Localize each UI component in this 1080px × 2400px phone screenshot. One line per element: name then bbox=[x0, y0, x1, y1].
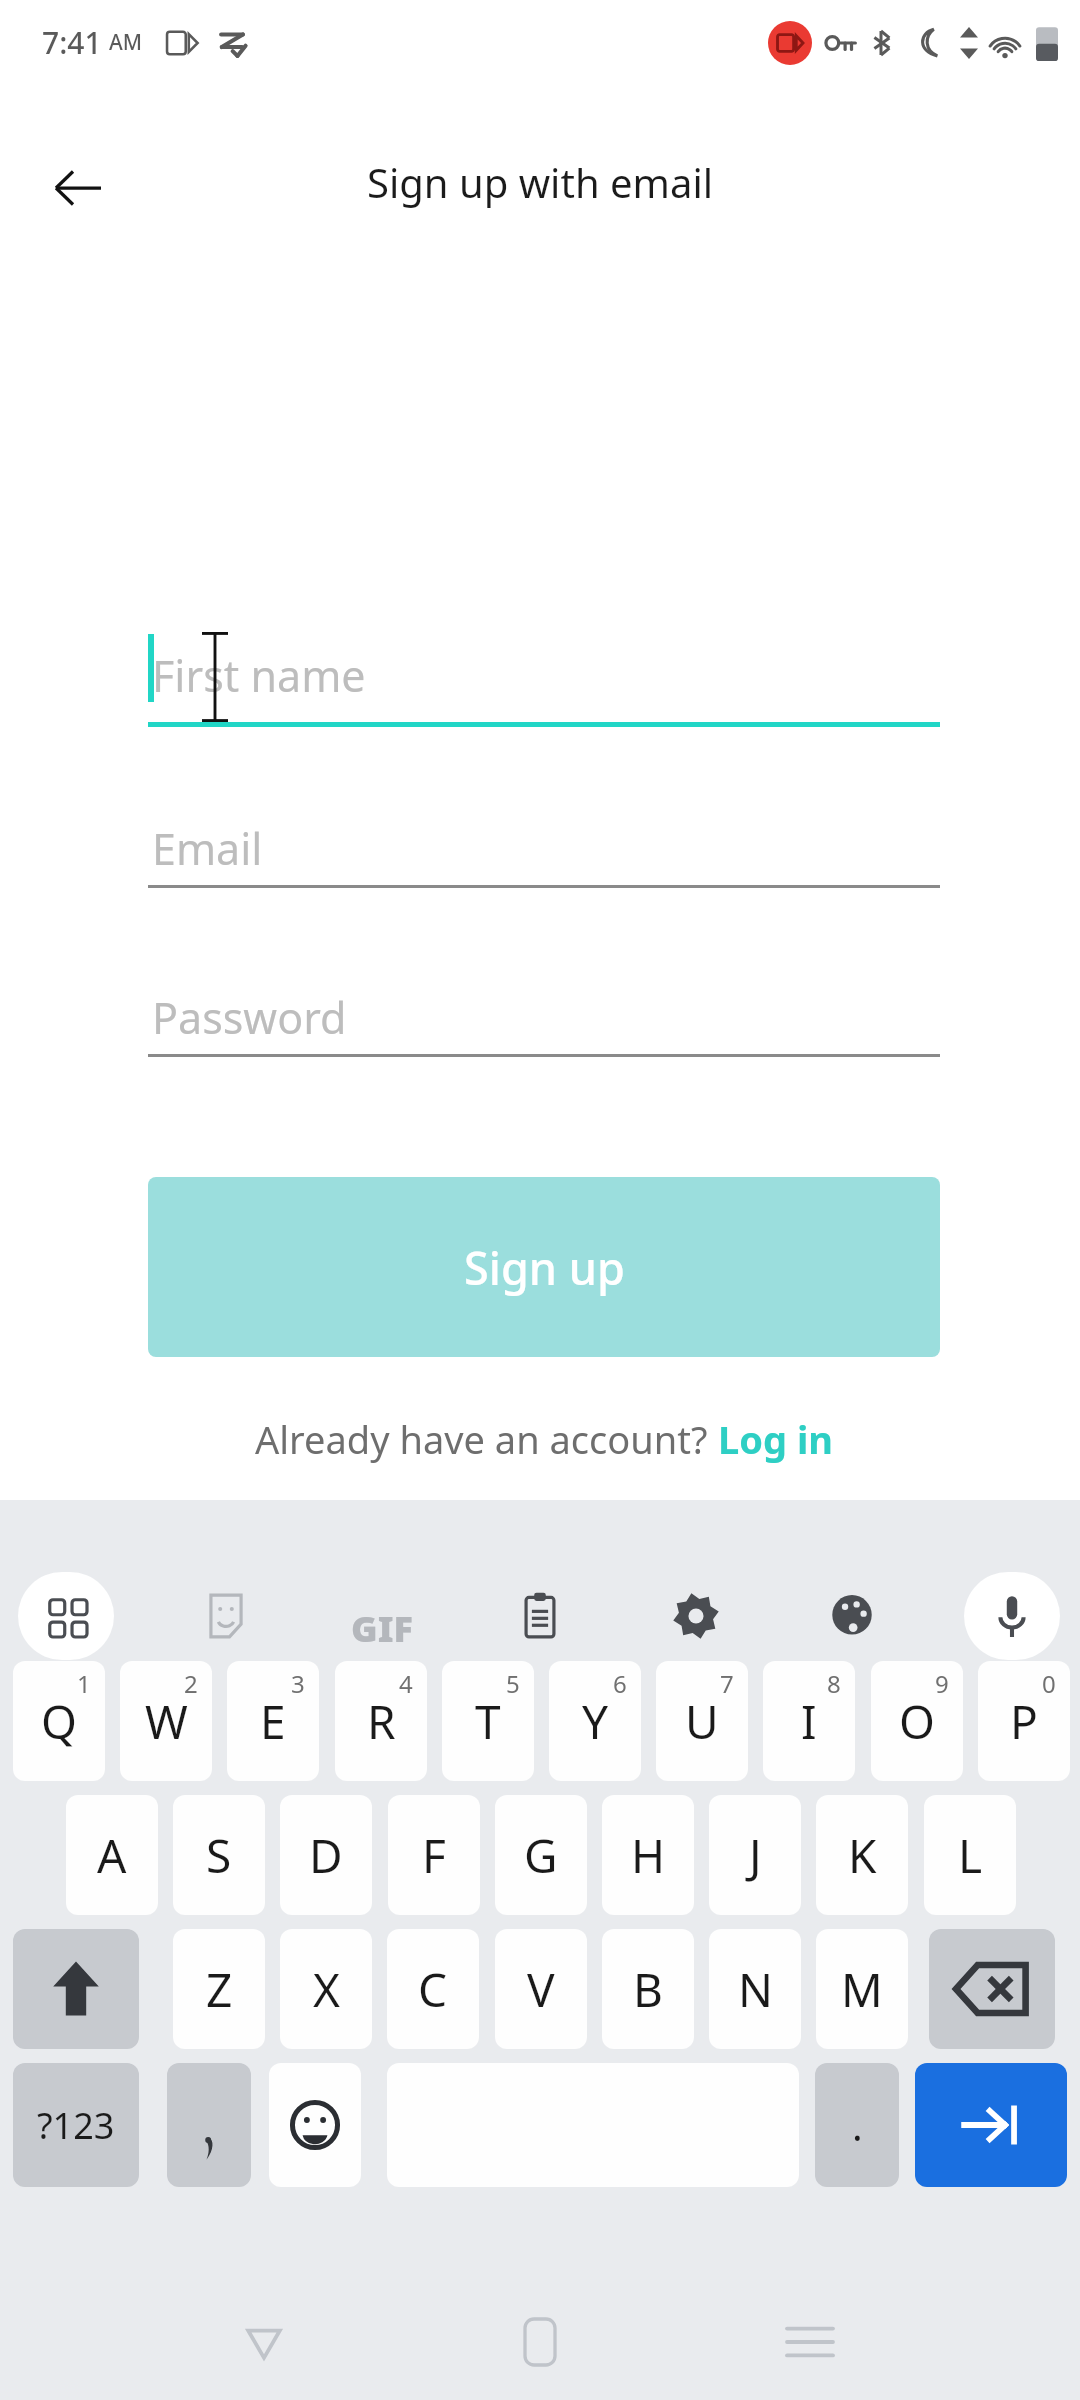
staticText: 3 bbox=[291, 1667, 305, 1700]
button[interactable]: I bbox=[763, 1661, 855, 1781]
staticText: R bbox=[367, 1690, 396, 1753]
button[interactable]: Next bbox=[915, 2063, 1067, 2187]
button[interactable]: Period bbox=[815, 2063, 899, 2187]
button[interactable]: Back bbox=[30, 140, 126, 236]
button[interactable]: H bbox=[602, 1795, 694, 1915]
staticText: Email bbox=[152, 819, 263, 878]
button[interactable]: GIF bbox=[328, 1596, 436, 1660]
button[interactable]: U bbox=[656, 1661, 748, 1781]
button[interactable]: Back bbox=[226, 2304, 302, 2380]
button[interactable]: A bbox=[66, 1795, 158, 1915]
button[interactable]: Settings bbox=[648, 1572, 744, 1660]
button[interactable]: First name bbox=[148, 626, 940, 722]
staticText: N bbox=[738, 1958, 773, 2021]
staticText: L bbox=[958, 1824, 983, 1887]
staticText: 4 bbox=[399, 1667, 413, 1700]
staticText: X bbox=[313, 1958, 340, 2021]
button[interactable]: Log in bbox=[718, 1413, 833, 1465]
button[interactable]: F bbox=[388, 1795, 480, 1915]
button[interactable]: Q bbox=[13, 1661, 105, 1781]
staticText: 7 bbox=[720, 1667, 734, 1700]
staticText: ?123 bbox=[37, 2101, 115, 2150]
staticText: C bbox=[418, 1958, 448, 2021]
button[interactable]: M bbox=[816, 1929, 908, 2049]
button[interactable]: V bbox=[495, 1929, 587, 2049]
staticText: 1 bbox=[77, 1667, 91, 1700]
staticText: GIF bbox=[351, 1604, 413, 1653]
staticText: E bbox=[260, 1690, 286, 1753]
staticText: Log in bbox=[718, 1413, 833, 1465]
staticText: 6 bbox=[613, 1667, 627, 1700]
staticText: S bbox=[206, 1824, 232, 1887]
button[interactable]: T bbox=[442, 1661, 534, 1781]
staticText: 5 bbox=[506, 1667, 520, 1700]
button[interactable]: Email bbox=[148, 809, 940, 888]
button[interactable]: Clipboard bbox=[492, 1572, 588, 1660]
staticText: AM bbox=[109, 28, 143, 57]
staticText: 7:41 bbox=[42, 22, 102, 63]
button[interactable]: Emoji bbox=[269, 2063, 361, 2187]
button[interactable]: R bbox=[335, 1661, 427, 1781]
staticText: D bbox=[309, 1824, 343, 1887]
button[interactable]: G bbox=[495, 1795, 587, 1915]
staticText: H bbox=[631, 1824, 666, 1887]
staticText: P bbox=[1010, 1690, 1038, 1753]
staticText: F bbox=[422, 1824, 446, 1887]
button[interactable]: N bbox=[709, 1929, 801, 2049]
button[interactable]: Stickers bbox=[178, 1572, 274, 1660]
button[interactable]: J bbox=[709, 1795, 801, 1915]
staticText: 9 bbox=[935, 1667, 949, 1700]
staticText: J bbox=[749, 1824, 762, 1887]
button[interactable]: C bbox=[387, 1929, 479, 2049]
button[interactable]: Sign up bbox=[148, 1177, 940, 1357]
staticText: Password bbox=[152, 988, 347, 1047]
button[interactable]: Y bbox=[549, 1661, 641, 1781]
staticText: 0 bbox=[1042, 1667, 1056, 1700]
staticText: 8 bbox=[827, 1667, 841, 1700]
button[interactable]: Symbols bbox=[13, 2063, 139, 2187]
button[interactable]: W bbox=[120, 1661, 212, 1781]
button[interactable]: Z bbox=[173, 1929, 265, 2049]
staticText: U bbox=[685, 1690, 719, 1753]
staticText: O bbox=[899, 1690, 935, 1753]
staticText: Already have an account? bbox=[255, 1413, 718, 1465]
staticText: Q bbox=[41, 1690, 77, 1753]
staticText: First name bbox=[152, 646, 366, 705]
button[interactable]: S bbox=[173, 1795, 265, 1915]
staticText: W bbox=[145, 1690, 188, 1753]
button[interactable]: Home bbox=[502, 2304, 578, 2380]
staticText: V bbox=[527, 1958, 555, 2021]
button[interactable]: B bbox=[602, 1929, 694, 2049]
button[interactable]: P bbox=[978, 1661, 1070, 1781]
staticText: Sign up bbox=[464, 1237, 625, 1298]
staticText: 2 bbox=[184, 1667, 198, 1700]
button[interactable]: Comma bbox=[167, 2063, 251, 2187]
button[interactable]: Voice input bbox=[964, 1572, 1060, 1660]
button[interactable]: D bbox=[280, 1795, 372, 1915]
button[interactable]: E bbox=[227, 1661, 319, 1781]
button[interactable]: O bbox=[871, 1661, 963, 1781]
staticText: M bbox=[841, 1958, 883, 2021]
staticText: T bbox=[475, 1690, 501, 1753]
staticText: Y bbox=[582, 1690, 609, 1753]
staticText: I bbox=[801, 1690, 817, 1753]
button[interactable]: Recents bbox=[772, 2304, 848, 2380]
staticText: . bbox=[852, 2098, 863, 2152]
button[interactable]: Switch keyboard bbox=[18, 1572, 114, 1660]
button[interactable]: K bbox=[816, 1795, 908, 1915]
button[interactable]: Password bbox=[148, 978, 940, 1057]
button[interactable]: Theme bbox=[804, 1572, 900, 1660]
staticText: Sign up with email bbox=[0, 155, 1080, 209]
button[interactable]: X bbox=[280, 1929, 372, 2049]
button[interactable]: L bbox=[924, 1795, 1016, 1915]
staticText: A bbox=[97, 1824, 127, 1887]
staticText: K bbox=[848, 1824, 877, 1887]
staticText: B bbox=[633, 1958, 663, 2021]
button[interactable]: Shift bbox=[13, 1929, 139, 2049]
button[interactable]: Backspace bbox=[929, 1929, 1055, 2049]
staticText: Z bbox=[206, 1958, 233, 2021]
staticText: G bbox=[524, 1824, 558, 1887]
